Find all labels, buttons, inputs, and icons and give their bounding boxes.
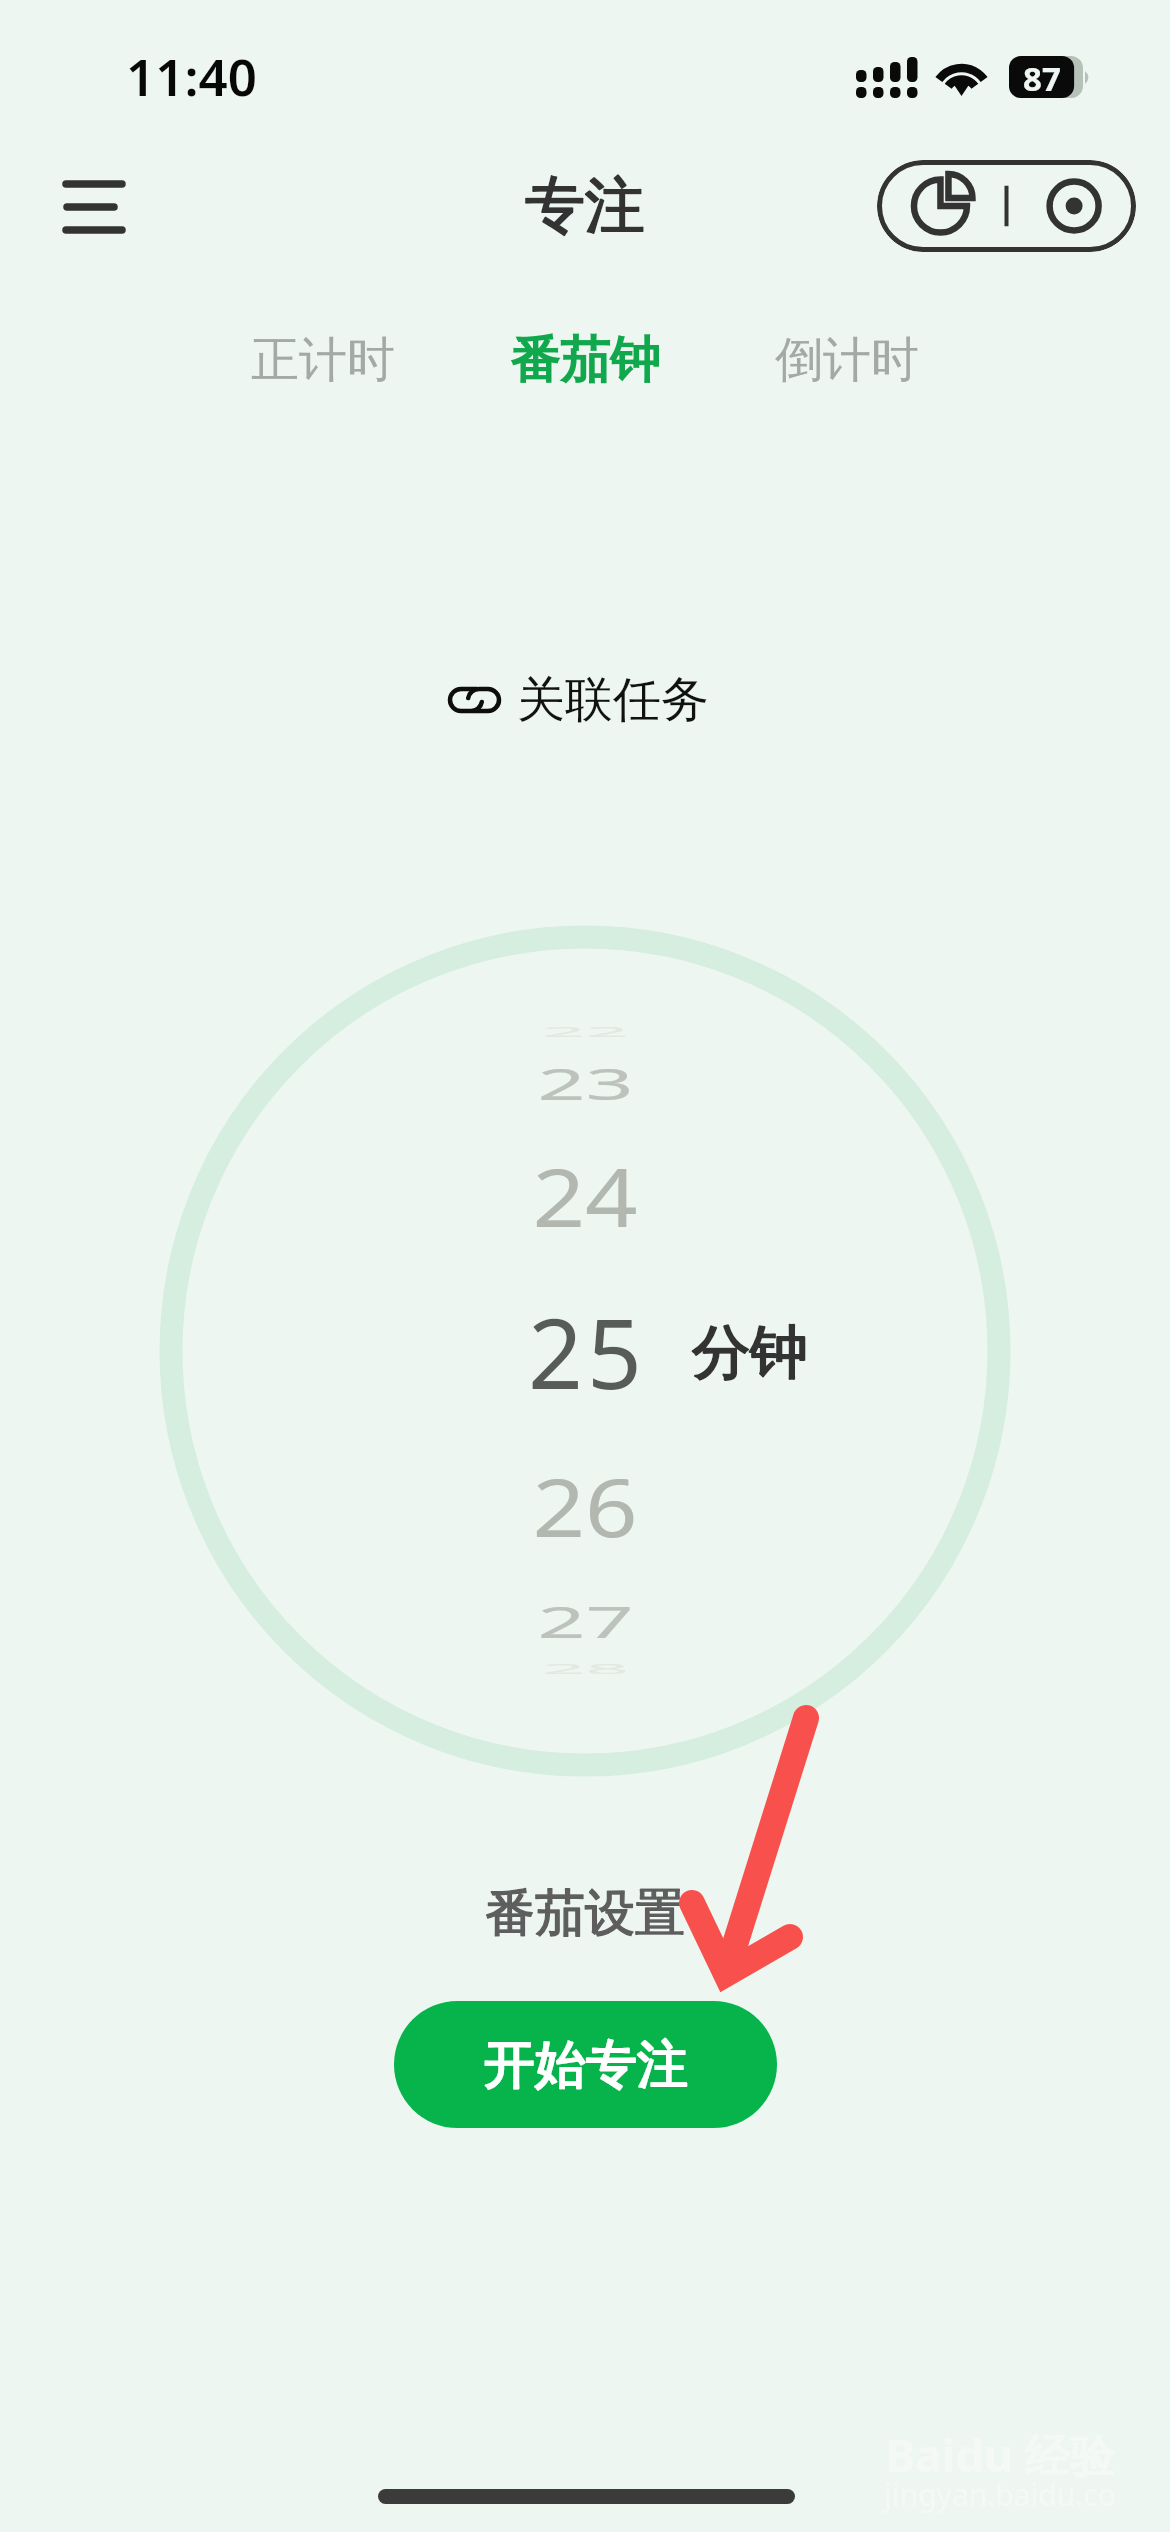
staticText: 24 (532, 1141, 638, 1247)
staticText: 倒计时 (775, 330, 919, 390)
button[interactable]: 番茄设置 (465, 1872, 705, 1954)
staticText: 分钟 (692, 1316, 808, 1389)
staticText: 分钟 (692, 1316, 808, 1389)
button[interactable]: 倒计时 (736, 318, 958, 402)
staticText: 23 (537, 1053, 634, 1113)
staticText: 87 (1023, 56, 1061, 98)
button[interactable]: 番茄钟 (474, 316, 696, 404)
staticText: 正计时 (251, 330, 395, 390)
staticText: 27 (537, 1591, 634, 1651)
staticText: 28 (542, 1658, 629, 1678)
staticText: 25 (528, 1286, 646, 1416)
staticText: 专注 (525, 168, 645, 244)
button[interactable]: 关联任务 (428, 652, 728, 748)
button[interactable]: 正计时 (212, 318, 434, 402)
staticText: 关联任务 (517, 670, 709, 730)
staticText: 番茄设置 (485, 1882, 685, 1945)
staticText: 开始专注 (484, 2033, 688, 2097)
button[interactable]: 开始专注 (394, 2001, 777, 2128)
staticText: 22 (542, 1021, 629, 1041)
staticText: 专注 (525, 168, 645, 244)
staticText: 番茄钟 (510, 329, 660, 392)
staticText: 26 (532, 1451, 638, 1557)
button[interactable]: Statistics (877, 160, 1006, 252)
button[interactable]: Focus record (1006, 160, 1136, 252)
staticText: 番茄设置 (485, 1882, 685, 1945)
staticText: 11:40 (126, 41, 257, 110)
staticText: 开始专注 (484, 2033, 688, 2097)
button[interactable]: Menu (42, 156, 144, 258)
staticText: Baidu 经验 (885, 2424, 1115, 2484)
